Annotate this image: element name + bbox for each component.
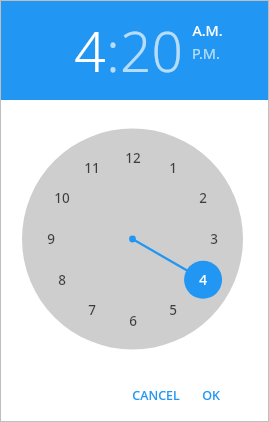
button[interactable]: CANCEL (125, 381, 187, 410)
button[interactable]: P.M. (192, 43, 220, 63)
button[interactable]: 11 (79, 158, 105, 178)
button[interactable]: 4 (190, 270, 216, 290)
staticText: CANCEL (132, 387, 180, 404)
button[interactable]: 9 (38, 229, 64, 249)
button[interactable]: 3 (201, 229, 227, 249)
staticText: 9 (47, 230, 55, 248)
button[interactable]: 7 (79, 300, 105, 320)
staticText: A.M. (192, 20, 223, 40)
staticText: 2 (199, 189, 207, 207)
button[interactable]: OK (195, 381, 227, 410)
staticText: 3 (210, 230, 218, 248)
staticText: 5 (169, 301, 177, 319)
staticText: P.M. (192, 43, 220, 63)
button[interactable]: 2 (190, 188, 216, 208)
button[interactable]: 12 (120, 148, 146, 168)
button[interactable]: Hour dial (0, 0, 269, 422)
button[interactable]: Minute 20 (120, 13, 183, 88)
button[interactable]: 6 (120, 311, 146, 331)
button[interactable]: Hour 4 (74, 13, 106, 88)
staticText: 11 (84, 159, 100, 177)
staticText: 8 (58, 271, 66, 289)
staticText: 4 (74, 13, 106, 88)
staticText: 20 (120, 13, 183, 88)
button[interactable]: A.M. (192, 20, 223, 40)
staticText: 4 (199, 271, 207, 289)
staticText: 1 (169, 159, 177, 177)
button[interactable]: 5 (160, 300, 186, 320)
staticText: OK (202, 387, 220, 404)
button[interactable]: 10 (49, 188, 75, 208)
staticText: : (106, 13, 120, 88)
staticText: 10 (54, 189, 70, 207)
staticText: 12 (125, 149, 141, 167)
staticText: 7 (88, 301, 96, 319)
button[interactable]: 8 (49, 270, 75, 290)
button[interactable]: 1 (160, 158, 186, 178)
staticText: 6 (129, 312, 137, 330)
